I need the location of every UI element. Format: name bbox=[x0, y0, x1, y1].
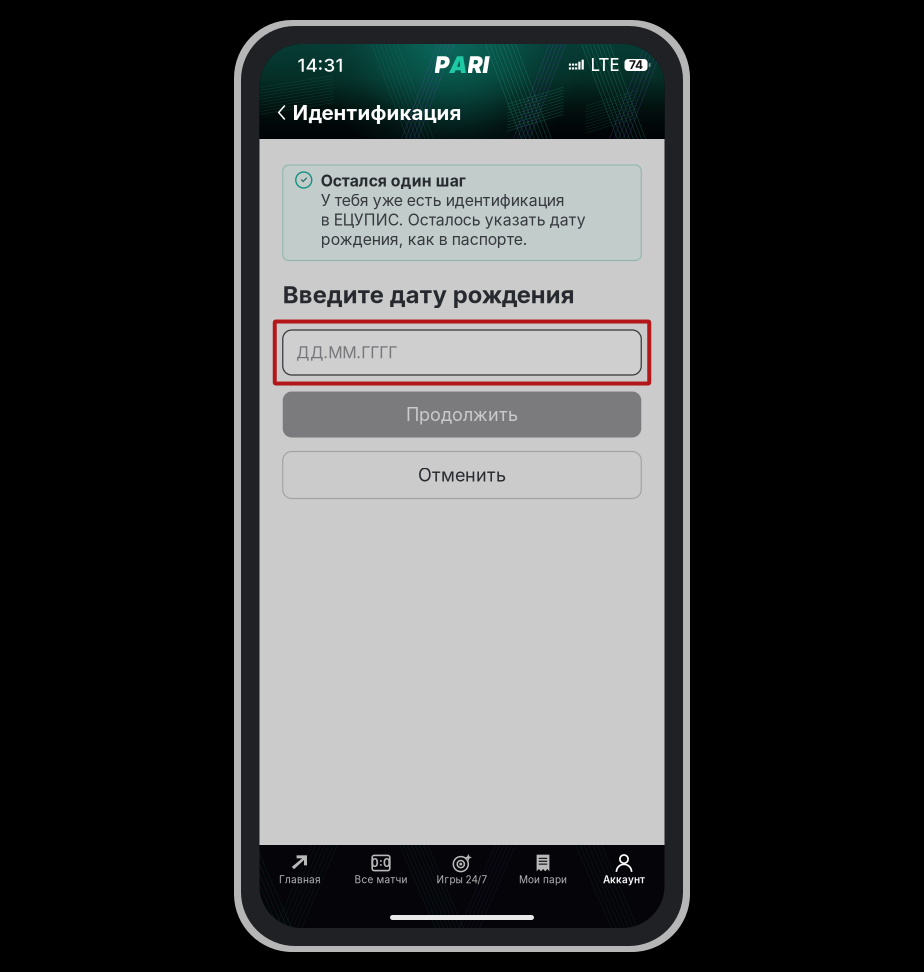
staticText: Игры 24/7 bbox=[436, 873, 487, 886]
staticText: P bbox=[434, 51, 449, 79]
staticText: Аккаунт bbox=[603, 873, 645, 886]
button[interactable]: Отменить bbox=[283, 451, 641, 498]
staticText: 0:0 bbox=[371, 856, 391, 870]
button[interactable]: 0:0 bbox=[340, 849, 421, 891]
staticText: Введите дату рождения bbox=[283, 280, 575, 309]
staticText: Главная bbox=[279, 873, 321, 886]
staticText: ДД.ММ.ГГГГ bbox=[296, 343, 397, 362]
button[interactable]: Главная bbox=[259, 849, 340, 891]
staticText: Мои пари bbox=[519, 873, 567, 886]
staticText: в ЕЦУПИС. Осталось указать дату bbox=[321, 210, 586, 229]
staticText: 14:31 bbox=[297, 54, 343, 76]
staticText: Идентификация bbox=[292, 100, 461, 125]
staticText: Все матчи bbox=[354, 873, 407, 886]
staticText: RI bbox=[467, 51, 489, 79]
staticText: A bbox=[449, 51, 467, 79]
staticText: 74 bbox=[629, 58, 643, 72]
staticText: Продолжить bbox=[406, 404, 518, 425]
button[interactable]: Мои пари bbox=[502, 849, 583, 891]
button[interactable]: Аккаунт bbox=[583, 849, 664, 891]
staticText: У тебя уже есть идентификация bbox=[321, 191, 565, 210]
staticText: Отменить bbox=[418, 464, 506, 486]
button[interactable]: Назад bbox=[270, 92, 292, 132]
staticText: Остался один шаг bbox=[321, 171, 466, 190]
staticText: рождения, как в паспорте. bbox=[321, 230, 528, 249]
staticText: LTE bbox=[590, 55, 619, 75]
button[interactable]: Игры 24/7 bbox=[421, 849, 502, 891]
button[interactable]: Продолжить bbox=[283, 391, 641, 437]
